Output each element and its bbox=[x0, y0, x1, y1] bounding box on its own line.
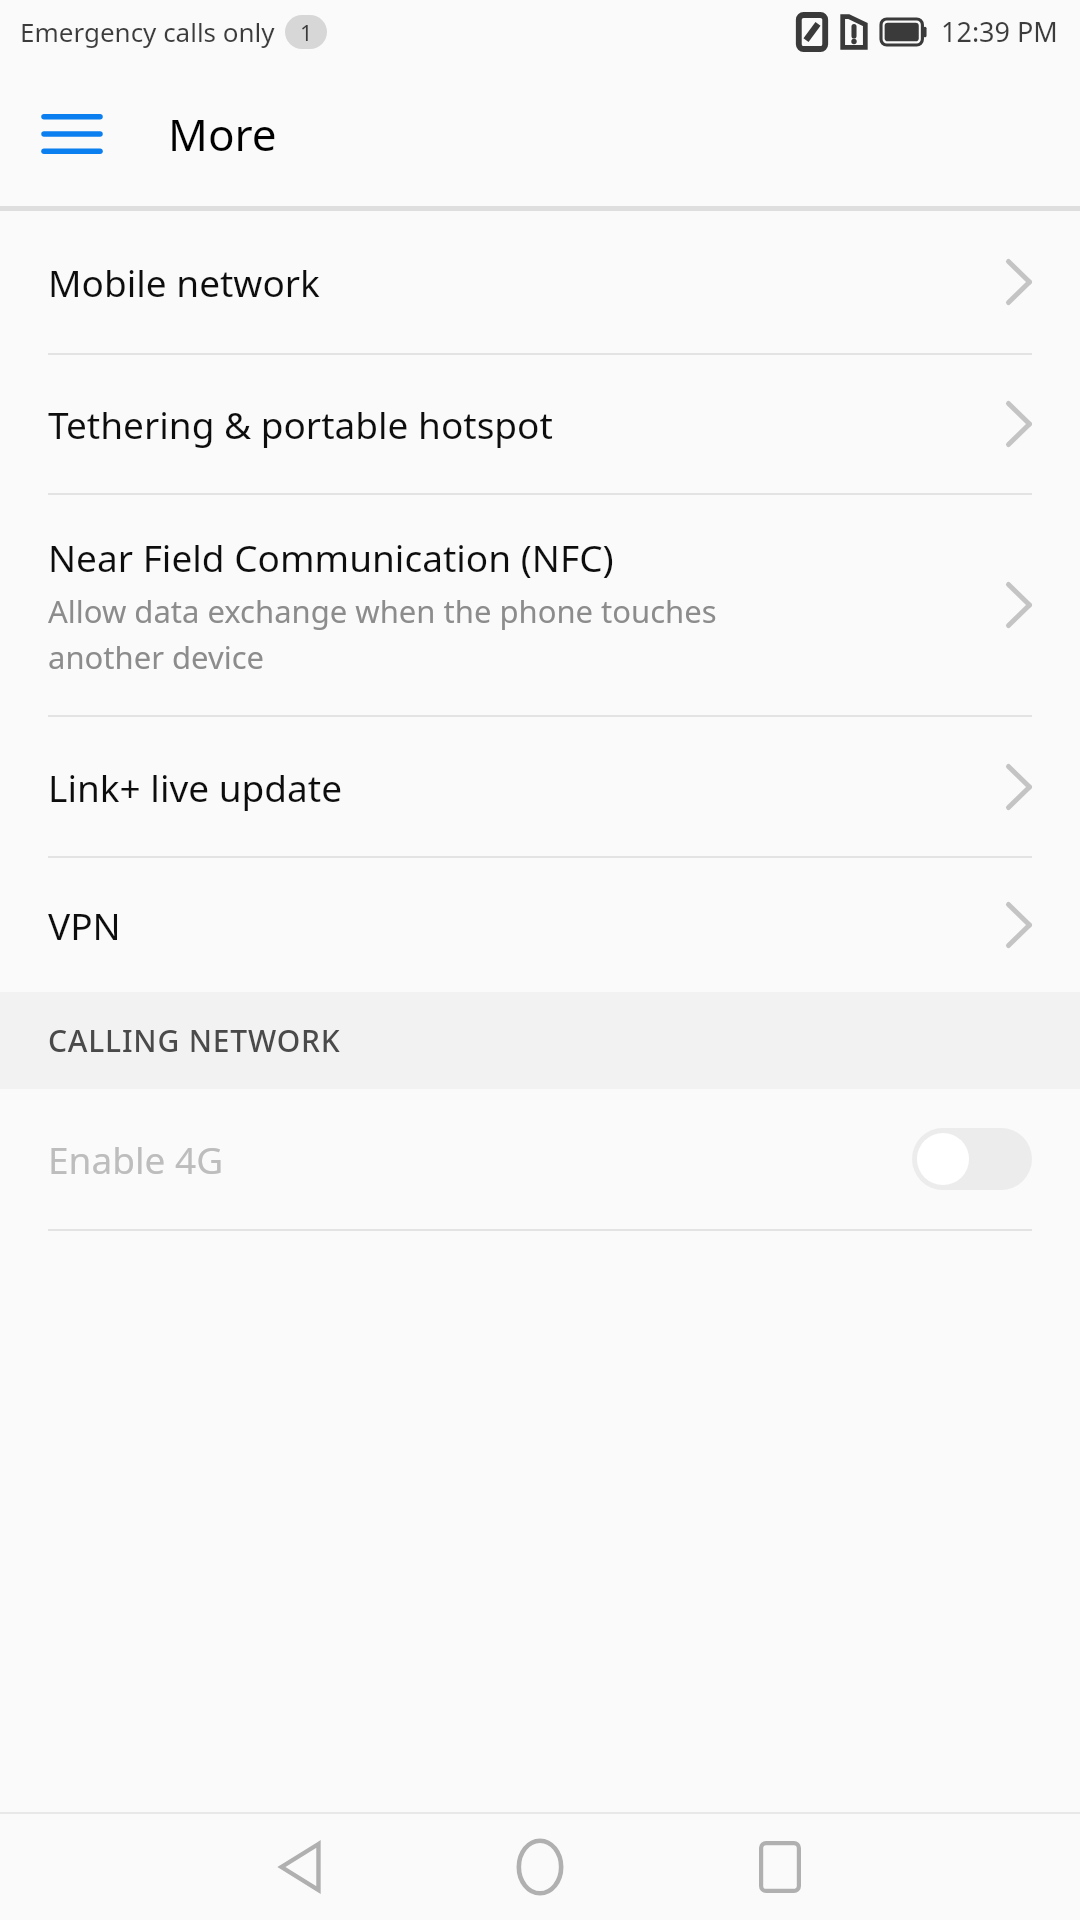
staticText: 12:39 PM bbox=[941, 13, 1058, 50]
staticText: Mobile network bbox=[48, 257, 320, 307]
button[interactable]: Recent apps bbox=[720, 1814, 840, 1920]
button[interactable]: Near Field Communication (NFC) bbox=[0, 495, 1080, 715]
staticText: Enable 4G bbox=[48, 1134, 224, 1184]
staticText: VPN bbox=[48, 900, 121, 950]
staticText: Emergency calls only bbox=[20, 14, 275, 49]
button[interactable]: Open navigation menu bbox=[36, 98, 108, 170]
button[interactable]: Back bbox=[240, 1814, 360, 1920]
staticText: More bbox=[168, 104, 277, 164]
staticText: 1 bbox=[300, 17, 313, 47]
button[interactable]: Mobile network bbox=[0, 211, 1080, 353]
staticText: Link+ live update bbox=[48, 762, 343, 812]
staticText: CALLING NETWORK bbox=[48, 1020, 341, 1061]
button[interactable]: VPN bbox=[0, 858, 1080, 992]
staticText: Tethering & portable hotspot bbox=[48, 399, 553, 449]
staticText: Allow data exchange when the phone touch… bbox=[48, 590, 717, 678]
button[interactable]: Tethering & portable hotspot bbox=[0, 355, 1080, 493]
button[interactable]: Link+ live update bbox=[0, 717, 1080, 856]
button[interactable]: Home bbox=[480, 1814, 600, 1920]
button[interactable]: Enable 4G bbox=[0, 1089, 1080, 1229]
staticText: Near Field Communication (NFC) bbox=[48, 532, 614, 582]
